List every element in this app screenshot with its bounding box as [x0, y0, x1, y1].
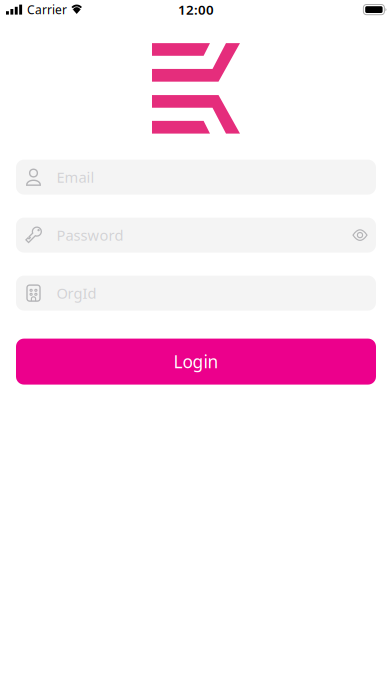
staticText: Password [56, 225, 123, 245]
staticText: Email [56, 167, 94, 187]
staticText: Login [173, 350, 218, 373]
button[interactable]: Show password [347, 222, 373, 248]
staticText: Carrier [27, 2, 67, 17]
staticText: 12:00 [178, 1, 214, 18]
staticText: OrgId [56, 283, 96, 303]
button[interactable]: Login [16, 339, 376, 385]
